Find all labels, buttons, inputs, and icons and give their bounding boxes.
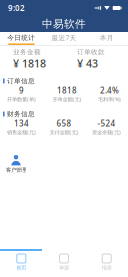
staticText: 2.4% xyxy=(100,85,119,96)
staticText: 资金余额(元) xyxy=(92,129,121,136)
staticText: 单据 xyxy=(59,264,69,271)
staticText: 订单收款 xyxy=(77,48,105,56)
staticText: 1818 xyxy=(57,85,77,96)
button[interactable]: 首页 xyxy=(0,253,43,271)
staticText: 开单数量(单) xyxy=(7,96,36,103)
staticText: 订单信息 xyxy=(7,77,35,85)
staticText: 今日统计 xyxy=(7,34,35,42)
staticText: ¥ 43 xyxy=(77,56,98,70)
staticText: ¥ 1818 xyxy=(13,56,46,70)
button[interactable]: 报表 xyxy=(85,253,128,271)
staticText: 报表 xyxy=(102,264,112,271)
staticText: 9 xyxy=(19,85,24,96)
staticText: -524 xyxy=(97,118,115,129)
button[interactable]: 客户管理 xyxy=(0,155,32,173)
staticText: 9:02 xyxy=(8,3,25,13)
button[interactable]: 单据 xyxy=(43,253,85,271)
staticText: 最近7天 xyxy=(51,33,76,42)
button[interactable]: 本月 xyxy=(85,32,128,45)
staticText: 中易软件 xyxy=(42,17,86,30)
staticText: 本月 xyxy=(100,34,114,42)
staticText: 开单金额(元) xyxy=(52,96,81,103)
staticText: 毛利率(%) xyxy=(98,96,121,103)
staticText: 财务信息 xyxy=(7,110,35,118)
staticText: 支付金额(元) xyxy=(49,129,78,136)
button[interactable]: 今日统计 xyxy=(0,32,43,45)
staticText: 客户管理 xyxy=(6,167,26,173)
staticText: 业务金额 xyxy=(13,48,41,56)
staticText: 658 xyxy=(56,118,71,129)
button[interactable]: 最近7天 xyxy=(43,32,85,45)
staticText: 销售金额(元) xyxy=(7,129,36,136)
staticText: 134 xyxy=(14,118,29,129)
staticText: 首页 xyxy=(16,264,26,271)
